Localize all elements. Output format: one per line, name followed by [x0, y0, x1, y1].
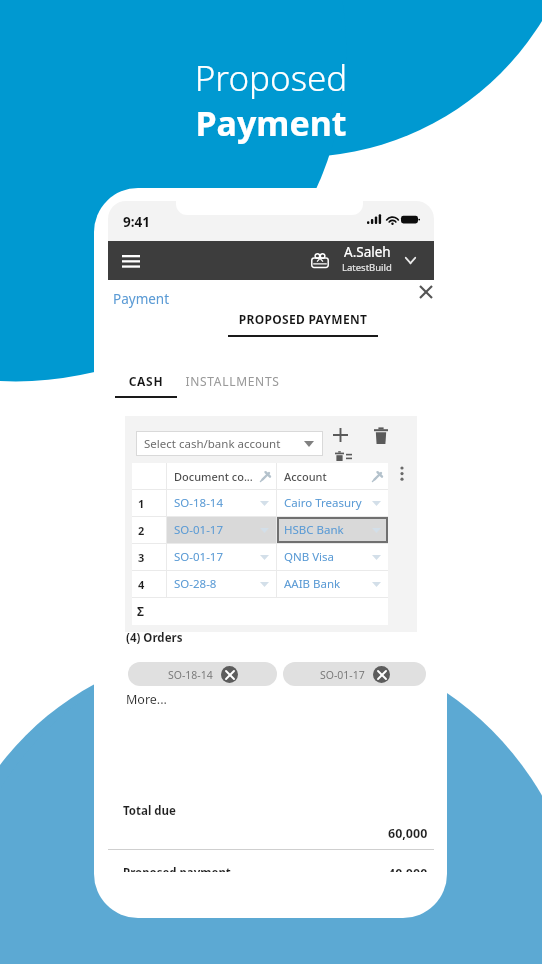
- button[interactable]: INSTALLMENTS: [185, 367, 280, 398]
- staticText: Document co...: [174, 469, 253, 484]
- button[interactable]: Select cash/bank account: [136, 431, 323, 456]
- button[interactable]: 4: [132, 571, 388, 597]
- staticText: Cairo Treasury: [284, 495, 362, 511]
- staticText: Account: [284, 469, 327, 484]
- staticText: 1: [138, 496, 145, 511]
- staticText: HSBC Bank: [284, 522, 344, 538]
- button[interactable]: Payment: [113, 290, 170, 308]
- staticText: INSTALLMENTS: [185, 373, 280, 389]
- button[interactable]: Close: [414, 280, 434, 304]
- staticText: AAIB Bank: [284, 576, 341, 592]
- staticText: SO-18-14: [168, 668, 213, 682]
- staticText: PROPOSED PAYMENT: [228, 311, 378, 327]
- button[interactable]: Document co...: [167, 463, 276, 489]
- button[interactable]: PROPOSED PAYMENT: [228, 305, 378, 337]
- staticText: Σ: [137, 603, 144, 619]
- staticText: LatestBuild: [342, 261, 392, 274]
- button[interactable]: 1: [132, 490, 388, 516]
- staticText: SO-28-8: [174, 576, 217, 592]
- staticText: Proposed payment: [123, 865, 231, 881]
- button[interactable]: More...: [126, 691, 167, 708]
- staticText: Proposed: [0, 54, 542, 102]
- staticText: Total due: [123, 803, 176, 819]
- button[interactable]: 3: [132, 544, 388, 570]
- staticText: SO-01-17: [174, 522, 224, 538]
- staticText: SO-18-14: [174, 495, 224, 511]
- staticText: QNB Visa: [284, 549, 335, 565]
- staticText: 2: [138, 523, 145, 538]
- button[interactable]: SO-18-14: [128, 662, 277, 686]
- staticText: 3: [138, 550, 145, 565]
- staticText: Select cash/bank account: [144, 436, 281, 452]
- staticText: 4: [138, 577, 145, 592]
- button[interactable]: A.Saleh: [311, 241, 434, 280]
- button[interactable]: SO-01-17: [283, 662, 426, 686]
- button[interactable]: 2: [132, 517, 388, 543]
- staticText: CASH: [115, 373, 177, 389]
- staticText: 9:41: [123, 213, 150, 231]
- staticText: 40,000: [388, 865, 428, 881]
- staticText: 60,000: [388, 825, 428, 842]
- button[interactable]: Add row: [328, 423, 352, 447]
- button[interactable]: Account: [277, 463, 388, 489]
- button[interactable]: More options: [392, 463, 412, 483]
- button[interactable]: Menu: [114, 241, 153, 280]
- staticText: (4) Orders: [126, 630, 183, 646]
- button[interactable]: Delete: [369, 423, 393, 447]
- staticText: A.Saleh: [344, 243, 391, 261]
- staticText: Payment: [0, 100, 542, 146]
- button[interactable]: CASH: [115, 367, 177, 398]
- staticText: SO-01-17: [320, 668, 365, 682]
- staticText: SO-01-17: [174, 549, 224, 565]
